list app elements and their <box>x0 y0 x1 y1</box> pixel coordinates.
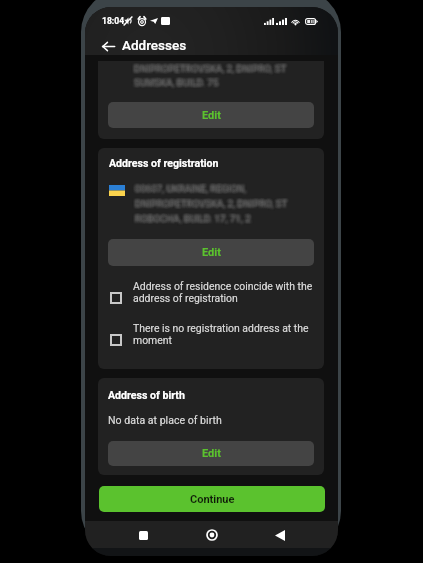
staticText: DNIPROPETROVSKA, 2, DNIPRO, ST <box>136 63 289 74</box>
staticText: Address of registration <box>109 157 219 169</box>
staticText: DNIPROPETROVSKA, 2, DNIPRO, ST <box>136 198 289 209</box>
staticText: DNIPROPETROVSKA, 2, DNIPRO, ST <box>136 196 289 207</box>
staticText: 00607, UKRAINE, REGION, <box>134 183 246 194</box>
staticText: 00607, UKRAINE, REGION, <box>133 185 245 196</box>
button[interactable]: Edit <box>108 441 314 466</box>
staticText: DNIPROPETROVSKA, 2, DNIPRO, ST <box>137 198 290 209</box>
staticText: There is no registration address at the <box>133 322 309 334</box>
staticText: ROBOCHA, BUILD. 17, 71, 2 <box>132 213 248 224</box>
staticText: DNIPROPETROVSKA, 2, DNIPRO, ST <box>138 198 291 209</box>
staticText: ROBOCHA, BUILD. 17, 71, 2 <box>132 211 248 222</box>
staticText: ROBOCHA, BUILD. 17, 71, 2 <box>138 215 254 226</box>
staticText: DNIPROPETROVSKA, 2, DNIPRO, ST <box>137 64 290 75</box>
staticText: ROBOCHA, BUILD. 17, 71, 2 <box>138 211 254 222</box>
staticText: DNIPROPETROVSKA, 2, DNIPRO, ST <box>131 63 284 74</box>
staticText: DNIPROPETROVSKA, 2, DNIPRO, ST <box>138 197 291 208</box>
staticText: address of registration <box>133 292 238 304</box>
button[interactable]: Recent apps <box>133 525 153 545</box>
staticText: DNIPROPETROVSKA, 2, DNIPRO, ST <box>134 197 287 208</box>
staticText: 18:04 <box>102 16 125 26</box>
staticText: 00607, UKRAINE, REGION, <box>137 181 249 192</box>
staticText: DNIPROPETROVSKA, 2, DNIPRO, ST <box>132 196 285 207</box>
staticText: 00607, UKRAINE, REGION, <box>137 184 249 195</box>
staticText: 00607, UKRAINE, REGION, <box>134 184 246 195</box>
staticText: ROBOCHA, BUILD. 17, 71, 2 <box>132 212 248 223</box>
button[interactable]: Edit <box>108 102 314 128</box>
button[interactable]: Address of residence coincide with the <box>108 281 314 315</box>
staticText: SUMSKA, BUILD. 75 <box>137 76 222 87</box>
staticText: DNIPROPETROVSKA, 2, DNIPRO, ST <box>132 197 285 208</box>
staticText: DNIPROPETROVSKA, 2, DNIPRO, ST <box>134 65 287 76</box>
staticText: Addresses <box>122 37 187 53</box>
staticText: Continue <box>190 493 235 506</box>
staticText: ROBOCHA, BUILD. 17, 71, 2 <box>135 211 251 222</box>
button[interactable]: Continue <box>99 486 325 512</box>
staticText: SUMSKA, BUILD. 75 <box>134 77 219 88</box>
staticText: ROBOCHA, BUILD. 17, 71, 2 <box>133 212 249 223</box>
staticText: ROBOCHA, BUILD. 17, 71, 2 <box>135 215 251 226</box>
staticText: moment <box>133 334 172 346</box>
staticText: SUMSKA, BUILD. 75 <box>133 78 218 89</box>
button[interactable]: Home <box>202 525 222 545</box>
staticText: 00607, UKRAINE, REGION, <box>132 182 244 193</box>
staticText: 00607, UKRAINE, REGION, <box>132 181 244 192</box>
staticText: 00607, UKRAINE, REGION, <box>134 182 246 193</box>
staticText: SUMSKA, BUILD. 75 <box>131 77 216 88</box>
staticText: Address of residence coincide with the <box>133 280 313 292</box>
staticText: DNIPROPETROVSKA, 2, DNIPRO, ST <box>132 199 285 210</box>
staticText: DNIPROPETROVSKA, 2, DNIPRO, ST <box>136 62 289 73</box>
staticText: 00607, UKRAINE, REGION, <box>135 184 247 195</box>
staticText: DNIPROPETROVSKA, 2, DNIPRO, ST <box>138 196 291 207</box>
staticText: 00607, UKRAINE, REGION, <box>136 183 248 194</box>
staticText: 00607, UKRAINE, REGION, <box>136 182 248 193</box>
button[interactable]: There is no registration address at the <box>108 323 314 357</box>
staticText: ROBOCHA, BUILD. 17, 71, 2 <box>132 215 248 226</box>
staticText: DNIPROPETROVSKA, 2, DNIPRO, ST <box>135 62 288 73</box>
staticText: DNIPROPETROVSKA, 2, DNIPRO, ST <box>137 63 290 74</box>
staticText: SUMSKA, BUILD. 75 <box>131 76 216 87</box>
staticText: DNIPROPETROVSKA, 2, DNIPRO, ST <box>132 62 285 73</box>
staticText: ROBOCHA, BUILD. 17, 71, 2 <box>138 212 254 223</box>
staticText: DNIPROPETROVSKA, 2, DNIPRO, ST <box>131 61 284 72</box>
button[interactable]: Back <box>95 33 121 59</box>
staticText: SUMSKA, BUILD. 75 <box>135 76 220 87</box>
staticText: ROBOCHA, BUILD. 17, 71, 2 <box>134 214 250 225</box>
staticText: DNIPROPETROVSKA, 2, DNIPRO, ST <box>138 199 291 210</box>
staticText: Edit <box>202 447 221 460</box>
staticText: SUMSKA, BUILD. 75 <box>133 77 218 88</box>
staticText: SUMSKA, BUILD. 75 <box>132 79 217 90</box>
staticText: SUMSKA, BUILD. 75 <box>136 79 221 90</box>
staticText: ROBOCHA, BUILD. 17, 71, 2 <box>133 214 249 225</box>
staticText: 00607, UKRAINE, REGION, <box>135 185 247 196</box>
staticText: 00607, UKRAINE, REGION, <box>138 182 250 193</box>
staticText: DNIPROPETROVSKA, 2, DNIPRO, ST <box>135 197 288 208</box>
staticText: ROBOCHA, BUILD. 17, 71, 2 <box>133 215 249 226</box>
staticText: SUMSKA, BUILD. 75 <box>135 78 220 89</box>
staticText: DNIPROPETROVSKA, 2, DNIPRO, ST <box>134 196 287 207</box>
staticText: ROBOCHA, BUILD. 17, 71, 2 <box>134 211 250 222</box>
staticText: 00607, UKRAINE, REGION, <box>132 184 244 195</box>
staticText: DNIPROPETROVSKA, 2, DNIPRO, ST <box>135 196 288 207</box>
staticText: 00607, UKRAINE, REGION, <box>138 183 250 194</box>
button[interactable]: Edit <box>108 239 314 266</box>
staticText: SUMSKA, BUILD. 75 <box>134 76 219 87</box>
staticText: ROBOCHA, BUILD. 17, 71, 2 <box>136 214 252 225</box>
staticText: DNIPROPETROVSKA, 2, DNIPRO, ST <box>135 61 288 72</box>
staticText: Address of birth <box>108 389 185 401</box>
staticText: 00607, UKRAINE, REGION, <box>135 182 247 193</box>
staticText: ROBOCHA, BUILD. 17, 71, 2 <box>137 214 253 225</box>
staticText: DNIPROPETROVSKA, 2, DNIPRO, ST <box>135 200 288 211</box>
staticText: No data at place of birth <box>108 414 222 426</box>
staticText: ROBOCHA, BUILD. 17, 71, 2 <box>137 213 253 224</box>
staticText: DNIPROPETROVSKA, 2, DNIPRO, ST <box>132 200 285 211</box>
staticText: SUMSKA, BUILD. 75 <box>131 78 216 89</box>
staticText: DNIPROPETROVSKA, 2, DNIPRO, ST <box>136 64 289 75</box>
staticText: 00607, UKRAINE, REGION, <box>133 184 245 195</box>
staticText: 00607, UKRAINE, REGION, <box>133 182 245 193</box>
staticText: DNIPROPETROVSKA, 2, DNIPRO, ST <box>132 61 285 72</box>
staticText: SUMSKA, BUILD. 75 <box>134 75 219 86</box>
staticText: DNIPROPETROVSKA, 2, DNIPRO, ST <box>135 198 288 209</box>
button[interactable]: Back <box>270 525 290 545</box>
staticText: SUMSKA, BUILD. 75 <box>131 79 216 90</box>
staticText: 00607, UKRAINE, REGION, <box>134 185 246 196</box>
